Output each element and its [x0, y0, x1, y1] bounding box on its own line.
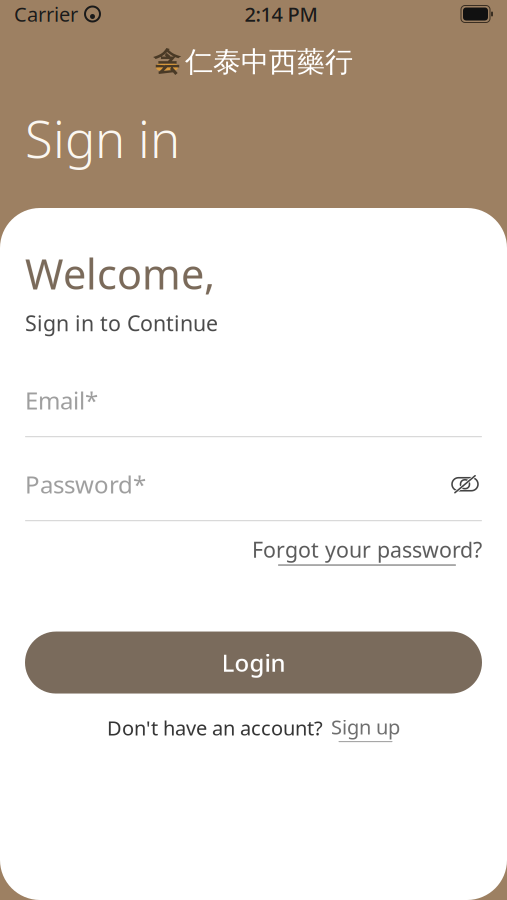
staticText: Sign up — [331, 713, 400, 740]
staticText: Email* — [25, 384, 98, 416]
button[interactable]: Login — [25, 631, 482, 693]
button[interactable]: Sign up — [331, 713, 400, 742]
staticText: Welcome, — [25, 246, 215, 301]
staticText: Don't have an account? — [107, 714, 323, 741]
staticText: Forgot your password? — [252, 535, 482, 563]
staticText: 侌 — [153, 46, 180, 78]
staticText: 2:14 PM — [244, 1, 317, 27]
staticText: Sign in — [25, 105, 180, 172]
staticText: Login — [221, 647, 285, 678]
staticText: Carrier — [14, 1, 78, 27]
staticText: 仁泰中西藥行 — [185, 45, 353, 79]
staticText: Password* — [25, 468, 146, 500]
button[interactable]: Show password — [448, 469, 482, 499]
staticText: Sign in to Continue — [25, 309, 218, 337]
button[interactable]: Forgot your password? — [252, 535, 482, 565]
